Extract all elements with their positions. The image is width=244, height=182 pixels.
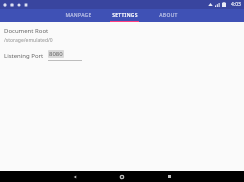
staticText: /storage/emulated/0 [4,37,53,44]
button[interactable]: Listening Port [0,49,244,62]
staticText: ABOUT [159,12,178,19]
staticText: Listening Port [4,52,44,60]
staticText: 4:03 [231,1,241,8]
button[interactable]: ABOUT [147,9,189,22]
staticText: 8080 [49,50,63,58]
staticText: MANPAGE [65,12,92,19]
button[interactable]: Back [60,171,90,182]
button[interactable]: Recent apps [154,171,184,182]
button[interactable]: Home [107,171,137,182]
button[interactable]: SETTINGS [101,9,147,22]
staticText: SETTINGS [112,12,138,19]
staticText: Document Root [4,27,49,35]
button[interactable]: MANPAGE [55,9,101,22]
button[interactable]: Document Root [0,25,244,46]
